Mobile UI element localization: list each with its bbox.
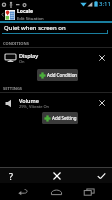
button[interactable]: Help <box>0 168 21 183</box>
button[interactable]: Add Setting <box>42 112 78 124</box>
button[interactable]: Back <box>6 183 40 200</box>
button[interactable]: Cancel <box>34 168 80 183</box>
staticText: CONDITIONS <box>3 41 29 46</box>
staticText: Add Condition <box>47 72 78 78</box>
staticText: Locale <box>17 8 33 15</box>
staticText: ? <box>9 170 13 182</box>
button[interactable]: Home <box>40 183 73 200</box>
staticText: Volume <box>19 97 39 104</box>
staticText: Add Setting <box>52 115 77 121</box>
staticText: Edit Situation <box>17 16 44 21</box>
staticText: On <box>19 59 25 64</box>
button[interactable]: Display <box>0 49 112 67</box>
button[interactable]: Done <box>80 168 112 183</box>
button[interactable]: Volume <box>0 94 112 112</box>
staticText: SETTINGS <box>3 86 23 91</box>
button[interactable]: Remove Display <box>94 50 110 66</box>
button[interactable]: Remove Volume <box>94 95 110 111</box>
staticText: 29%, Vibrate On <box>19 104 50 109</box>
staticText: Quiet when screen on <box>4 24 66 32</box>
button[interactable]: Navigate up <box>0 8 5 21</box>
button[interactable]: Add Condition <box>37 69 78 81</box>
button[interactable]: Recent apps <box>73 183 106 200</box>
staticText: Display <box>19 52 39 59</box>
staticText: 3:11 <box>99 0 111 8</box>
